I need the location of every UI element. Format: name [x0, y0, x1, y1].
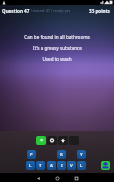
- button[interactable]: I: [57, 161, 66, 170]
- button[interactable]: V: [67, 161, 76, 170]
- staticText: L: [29, 163, 32, 169]
- button[interactable]: Hint: [36, 136, 46, 145]
- staticText: It's a greasy substance: [33, 45, 82, 51]
- staticText: Can be found in all bathrooms: [24, 34, 90, 40]
- staticText: P: [30, 152, 33, 158]
- button[interactable]: R: [57, 150, 66, 159]
- button[interactable]: L: [77, 161, 86, 170]
- button[interactable]: Y: [77, 150, 86, 159]
- button[interactable]: Shift: [58, 136, 68, 145]
- button[interactable]: A: [47, 161, 56, 170]
- button[interactable]: Home: [53, 173, 62, 182]
- button[interactable]: L: [26, 161, 35, 170]
- staticText: R: [60, 152, 63, 158]
- staticText: T: [39, 163, 42, 169]
- button[interactable]: Question 47: [0, 8, 30, 14]
- button[interactable]: 33 points: [89, 8, 114, 14]
- button[interactable]: Recents: [72, 173, 81, 182]
- staticText: I: [61, 163, 63, 169]
- button[interactable]: Switch to letters: [101, 161, 110, 170]
- staticText: A: [50, 163, 53, 169]
- staticText: V: [70, 163, 73, 169]
- button[interactable]: Back: [34, 173, 43, 182]
- button[interactable]: T: [36, 161, 45, 170]
- button[interactable]: More: [69, 136, 79, 145]
- button[interactable]: P: [27, 150, 36, 159]
- staticText: L: [80, 163, 83, 169]
- staticText: Used to wash: [42, 56, 72, 62]
- staticText: Y: [80, 152, 83, 158]
- staticText: Unused: 47 / ready: yes: [31, 8, 71, 13]
- button[interactable]: Settings: [47, 136, 57, 145]
